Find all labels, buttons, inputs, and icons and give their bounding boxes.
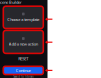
staticText: RESET — [18, 56, 28, 61]
staticText: Scene Builder — [0, 0, 22, 5]
staticText: Continue — [16, 68, 31, 73]
staticText: Saved to library — [13, 75, 33, 78]
button[interactable]: Add a new action — [3, 30, 43, 53]
staticText: Add a new action — [9, 41, 38, 47]
button[interactable]: Choose a template — [3, 6, 43, 28]
staticText: Choose a template — [7, 17, 39, 22]
button[interactable]: Continue — [3, 66, 43, 74]
button[interactable]: RESET — [18, 56, 28, 61]
